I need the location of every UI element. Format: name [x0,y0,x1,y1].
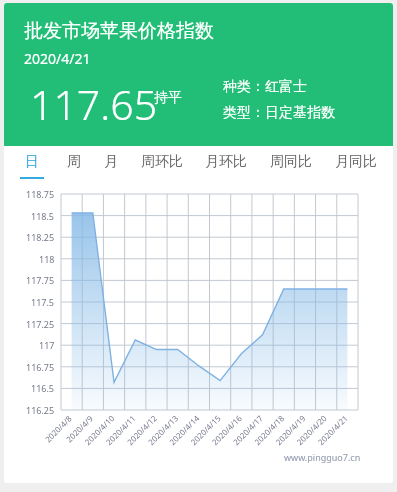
staticText: 月同比 [335,153,377,171]
button[interactable]: 周 [63,151,85,181]
staticText: 周环比 [141,153,183,171]
button[interactable]: 月环比 [201,151,251,181]
button[interactable]: 周同比 [266,151,316,181]
staticText: 月 [104,153,118,171]
button[interactable]: 日 [16,151,48,181]
staticText: 种类：红富士 [223,78,307,96]
staticText: 批发市场苹果价格指数 [24,19,214,43]
staticText: 2020/4/21 [24,49,91,68]
button[interactable]: 月 [100,151,122,181]
staticText: 117.65 [30,76,158,132]
button[interactable]: 月同比 [331,151,381,181]
staticText: 类型：日定基指数 [223,104,335,122]
staticText: 持平 [154,89,182,107]
staticText: 月环比 [205,153,247,171]
button[interactable]: 周环比 [137,151,187,181]
staticText: 周 [67,153,81,171]
staticText: 周同比 [270,153,312,171]
staticText: 日 [25,153,39,171]
